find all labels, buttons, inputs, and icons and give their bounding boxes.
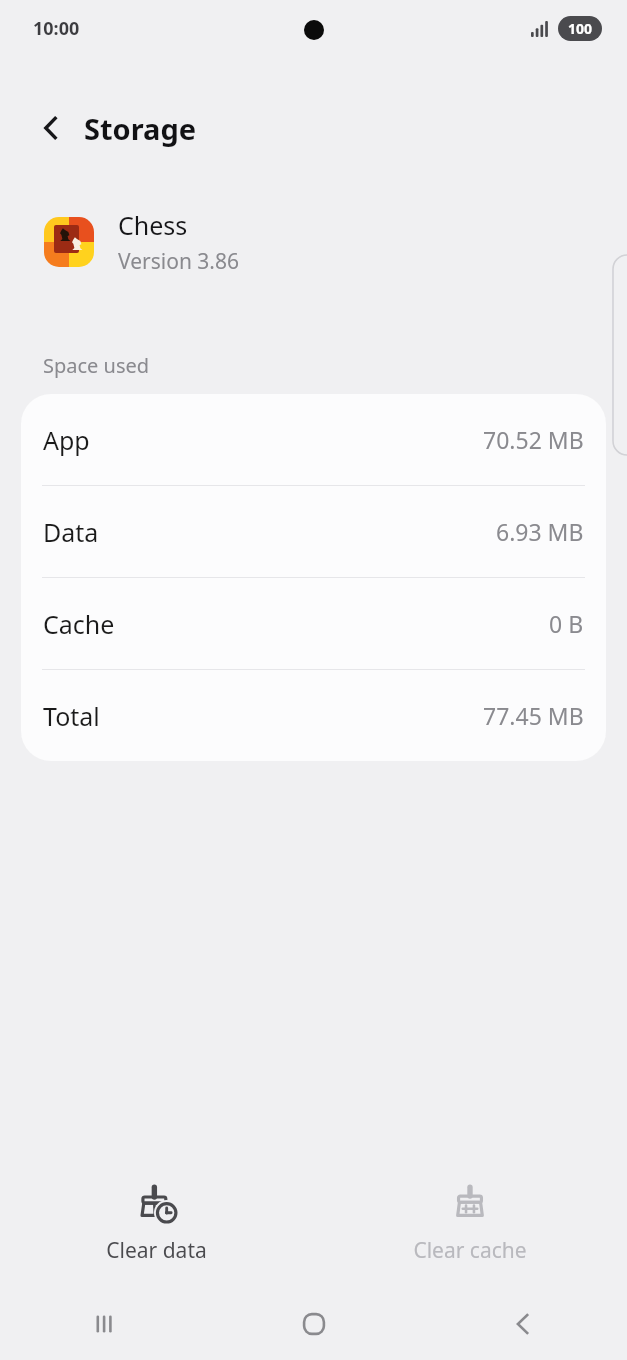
button[interactable]: Clear cache [313, 1168, 627, 1278]
staticText: Chess [118, 208, 188, 242]
staticText: Clear cache [413, 1236, 527, 1265]
staticText: Total [43, 699, 100, 733]
staticText: Clear data [106, 1236, 207, 1265]
button[interactable]: Back [418, 1288, 627, 1360]
staticText: Space used [43, 352, 150, 379]
button[interactable]: Cache [21, 578, 606, 669]
staticText: 6.93 MB [496, 516, 584, 547]
button[interactable]: Recents [0, 1288, 209, 1360]
staticText: App [43, 423, 90, 457]
staticText: 0 B [549, 608, 584, 639]
staticText: Storage [84, 109, 197, 148]
staticText: Cache [43, 607, 115, 641]
button[interactable]: App [21, 394, 606, 485]
button[interactable]: Total [21, 670, 606, 761]
staticText: 10:00 [33, 16, 80, 41]
button[interactable]: Back [30, 107, 72, 149]
staticText: 100 [568, 19, 593, 38]
staticText: Version 3.86 [118, 247, 239, 276]
staticText: Data [43, 515, 99, 549]
button[interactable]: Home [209, 1288, 418, 1360]
button[interactable]: Data [21, 486, 606, 577]
staticText: 77.45 MB [483, 700, 584, 731]
staticText: 70.52 MB [483, 424, 584, 455]
button[interactable]: Clear data [0, 1168, 313, 1278]
